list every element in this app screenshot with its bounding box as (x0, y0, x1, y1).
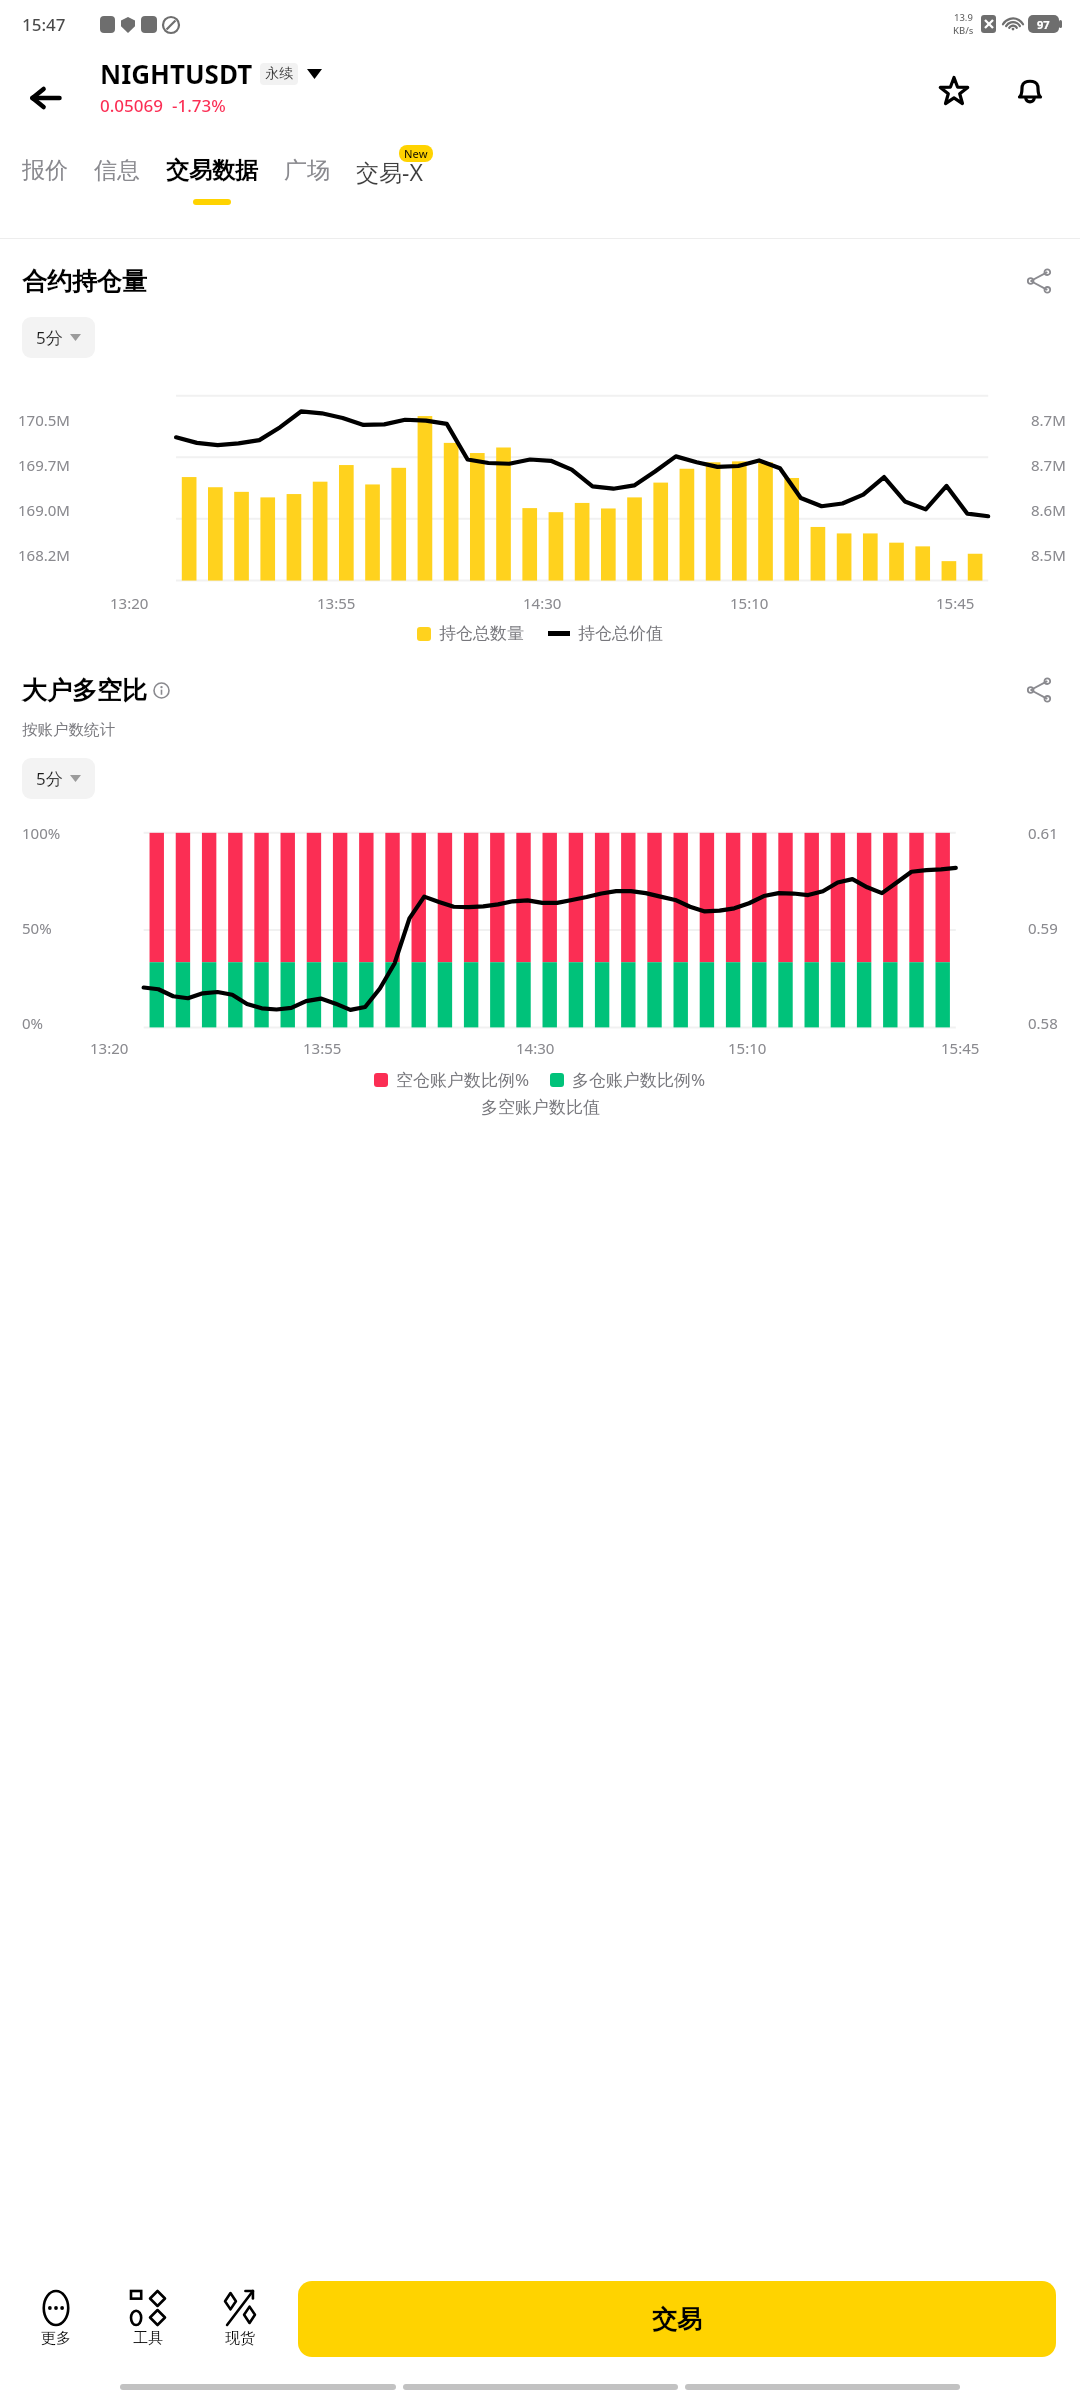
button[interactable]: 报价 (22, 156, 68, 185)
staticText: 工具 (133, 2329, 163, 2348)
button[interactable]: 更多 (24, 2291, 88, 2348)
staticText: 0.58 (1028, 1013, 1058, 1033)
staticText: 持仓总价值 (578, 623, 663, 644)
button[interactable]: Share (1016, 261, 1062, 301)
staticText: 13.9 (954, 11, 973, 24)
staticText: -1.73% (172, 94, 226, 117)
button[interactable]: 广场 (284, 156, 330, 185)
staticText: 0.05069 (100, 94, 163, 117)
button[interactable]: 工具 (116, 2291, 180, 2348)
staticText: 报价 (22, 156, 68, 185)
staticText: 15:45 (941, 1038, 980, 1058)
staticText: 169.0M (18, 500, 70, 520)
staticText: 8.5M (1031, 545, 1066, 565)
staticText: 按账户数统计 (22, 720, 115, 740)
staticText: 更多 (41, 2329, 71, 2348)
staticText: 15:47 (22, 13, 66, 36)
button[interactable]: 现货 (208, 2291, 272, 2348)
staticText: 多仓账户数比例% (572, 1068, 706, 1091)
staticText: 97 (1037, 17, 1050, 32)
staticText: 广场 (284, 156, 330, 185)
staticText: 5分 (36, 326, 63, 349)
staticText: KB/s (953, 24, 974, 37)
staticText: 14:30 (516, 1038, 555, 1058)
staticText: 0% (22, 1013, 44, 1033)
staticText: 0.61 (1028, 823, 1058, 843)
staticText: 13:20 (110, 593, 149, 613)
button[interactable]: 信息 (94, 156, 140, 185)
button[interactable]: 5分 (22, 758, 95, 799)
staticText: 169.7M (18, 455, 70, 475)
button[interactable]: Back (18, 70, 74, 126)
button[interactable]: 交易-X (356, 156, 423, 187)
staticText: 5分 (36, 767, 63, 790)
staticText: 8.7M (1031, 410, 1066, 430)
staticText: 14:30 (523, 593, 562, 613)
staticText: 交易数据 (166, 156, 258, 185)
staticText: 168.2M (18, 545, 70, 565)
button[interactable]: Notifications (1002, 63, 1058, 119)
button[interactable]: 交易数据 (166, 156, 258, 205)
button[interactable]: 交易 (298, 2281, 1056, 2357)
staticText: 15:10 (730, 593, 769, 613)
staticText: 50% (22, 918, 52, 938)
button[interactable]: Share (1016, 670, 1062, 710)
staticText: 空仓账户数比例% (396, 1068, 530, 1091)
staticText: NIGHTUSDT (100, 56, 253, 91)
staticText: 8.7M (1031, 455, 1066, 475)
staticText: 100% (22, 823, 61, 843)
staticText: 13:55 (303, 1038, 342, 1058)
staticText: 交易 (652, 2304, 702, 2335)
button[interactable]: Favorite (926, 63, 982, 119)
staticText: 0.59 (1028, 918, 1058, 938)
staticText: New (404, 146, 428, 161)
staticText: 现货 (225, 2329, 255, 2348)
staticText: 13:55 (317, 593, 356, 613)
staticText: 持仓总数量 (439, 623, 524, 644)
staticText: 合约持仓量 (22, 266, 147, 297)
staticText: 多空账户数比值 (481, 1097, 600, 1118)
staticText: 交易-X (356, 156, 423, 187)
staticText: 永续 (265, 65, 293, 83)
staticText: 13:20 (90, 1038, 129, 1058)
staticText: 8.6M (1031, 500, 1066, 520)
staticText: 大户多空比 (22, 675, 147, 706)
staticText: 信息 (94, 156, 140, 185)
staticText: 15:10 (728, 1038, 767, 1058)
staticText: 15:45 (936, 593, 975, 613)
staticText: 170.5M (18, 410, 70, 430)
button[interactable]: 5分 (22, 317, 95, 358)
